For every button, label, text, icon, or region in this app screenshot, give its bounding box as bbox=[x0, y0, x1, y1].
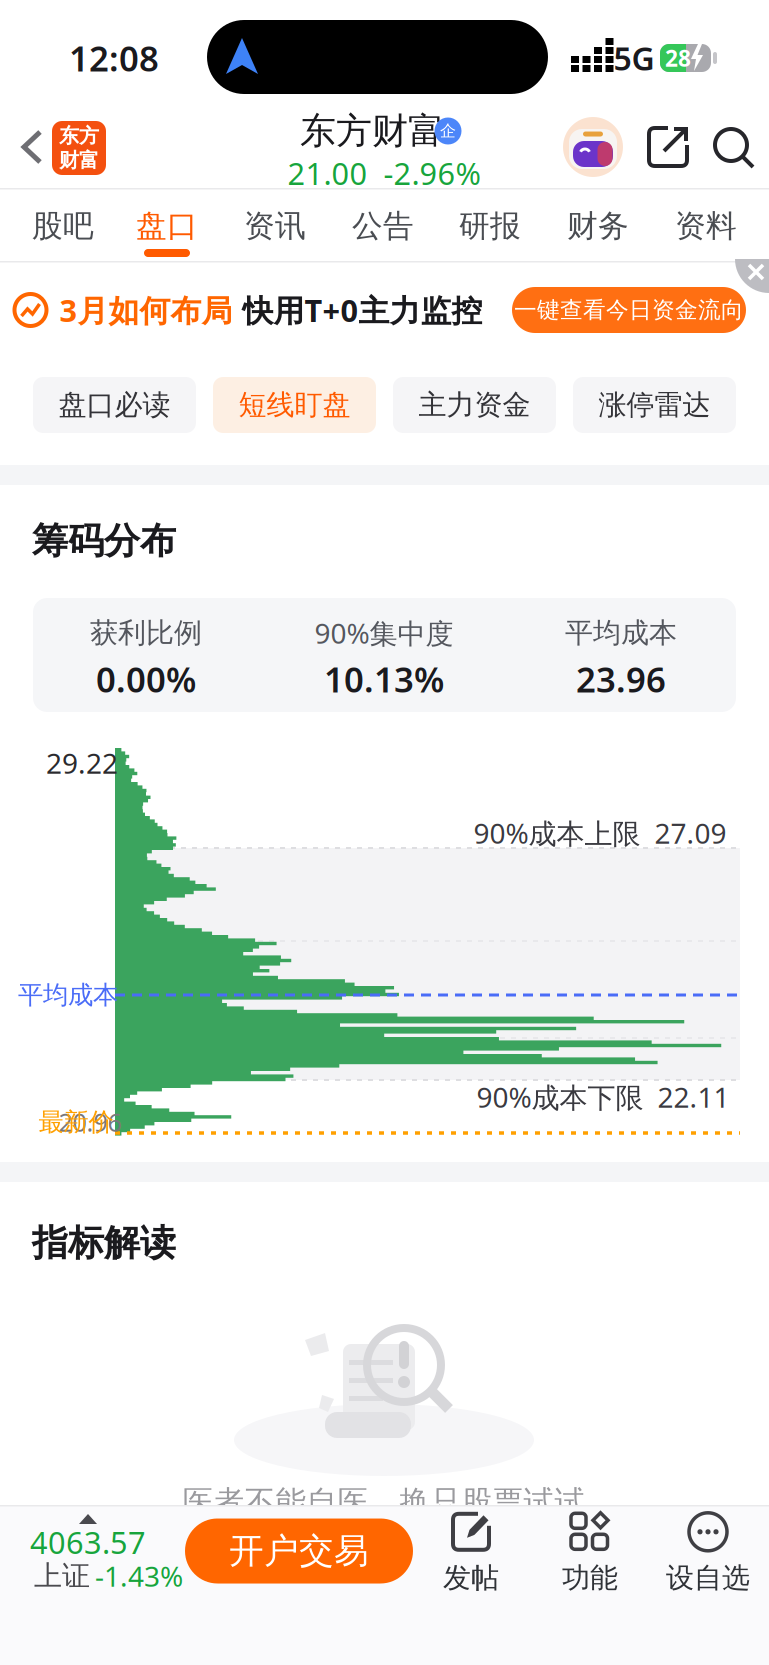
staticText: 平均成本 bbox=[565, 616, 677, 650]
staticText: 功能 bbox=[562, 1561, 618, 1595]
button[interactable]: 资讯 bbox=[227, 194, 323, 258]
staticText: -1.43% bbox=[95, 1557, 183, 1595]
button[interactable]: 涨停雷达 bbox=[573, 377, 736, 433]
button[interactable]: Share bbox=[646, 125, 690, 169]
staticText: 4063.57 bbox=[30, 1522, 146, 1562]
button[interactable]: 股吧 bbox=[15, 194, 111, 258]
staticText: 资料 bbox=[675, 207, 737, 245]
button[interactable]: 设自选 bbox=[648, 1506, 768, 1600]
button[interactable]: 研报 bbox=[442, 194, 538, 258]
staticText: 筹码分布 bbox=[32, 519, 176, 563]
staticText: 东方 bbox=[59, 123, 99, 148]
button[interactable]: 功能 bbox=[540, 1506, 640, 1600]
staticText: 盘口必读 bbox=[58, 388, 170, 422]
staticText: 90%集中度 bbox=[314, 614, 453, 652]
staticText: 一键查看今日资金流向 bbox=[514, 296, 744, 324]
button[interactable]: Close bbox=[733, 259, 769, 293]
staticText: 主力资金 bbox=[418, 388, 530, 422]
staticText: 公告 bbox=[352, 207, 414, 245]
staticText: 财富 bbox=[59, 148, 99, 173]
staticText: 发帖 bbox=[443, 1561, 499, 1595]
button[interactable]: 公告 bbox=[335, 194, 431, 258]
button[interactable]: 开户交易 bbox=[185, 1518, 413, 1583]
staticText: 医者不能自医，换只股票试试 bbox=[182, 1483, 585, 1521]
staticText: 最新价 bbox=[38, 1106, 113, 1137]
staticText: 上证 bbox=[34, 1559, 90, 1593]
staticText: 90%成本下限 22.11 bbox=[476, 1078, 729, 1116]
staticText: 开户交易 bbox=[229, 1530, 369, 1572]
staticText: 20.96 bbox=[58, 1105, 121, 1139]
button[interactable]: 3月如何布局 快用T+0主力监控 bbox=[11, 278, 482, 342]
staticText: 12:08 bbox=[69, 35, 159, 81]
button[interactable]: 财务 bbox=[550, 194, 646, 258]
staticText: 短线盯盘 bbox=[238, 388, 350, 422]
button[interactable]: 盘口 bbox=[119, 194, 215, 258]
button[interactable]: 短线盯盘 bbox=[213, 377, 376, 433]
staticText: 10.13% bbox=[324, 656, 444, 702]
staticText: 3月如何布局 bbox=[59, 290, 232, 330]
staticText: 盘口 bbox=[136, 207, 198, 245]
staticText: 平均成本 bbox=[18, 979, 118, 1010]
staticText: 0.00% bbox=[96, 656, 196, 702]
staticText: 设自选 bbox=[666, 1561, 750, 1595]
staticText: 23.96 bbox=[576, 656, 666, 702]
staticText: 股吧 bbox=[32, 207, 94, 245]
button[interactable]: 一键查看今日资金流向 bbox=[512, 287, 746, 333]
button[interactable]: Search bbox=[712, 126, 756, 170]
button[interactable]: 主力资金 bbox=[393, 377, 556, 433]
staticText: 企 bbox=[440, 121, 456, 141]
staticText: 涨停雷达 bbox=[598, 388, 710, 422]
button[interactable]: 东方财富 bbox=[52, 121, 106, 175]
button[interactable]: 智能助手 bbox=[563, 117, 623, 177]
staticText: 财务 bbox=[567, 207, 629, 245]
staticText: 90%成本上限 27.09 bbox=[473, 814, 726, 852]
staticText: 东方财富 bbox=[300, 109, 444, 153]
staticText: -2.96% bbox=[383, 153, 480, 193]
button[interactable]: 发帖 bbox=[421, 1506, 521, 1600]
staticText: 21.00 bbox=[287, 153, 367, 193]
button[interactable]: Back bbox=[20, 130, 46, 164]
staticText: 快用T+0主力监控 bbox=[242, 290, 482, 330]
staticText: 资讯 bbox=[244, 207, 306, 245]
staticText: 29.22 bbox=[46, 744, 118, 782]
staticText: 5G bbox=[613, 37, 654, 79]
button[interactable]: 盘口必读 bbox=[33, 377, 196, 433]
staticText: 指标解读 bbox=[32, 1221, 176, 1265]
staticText: 获利比例 bbox=[90, 616, 202, 650]
staticText: 研报 bbox=[459, 207, 521, 245]
button[interactable]: 资料 bbox=[658, 194, 754, 258]
button[interactable]: 上证指数 bbox=[0, 1506, 180, 1598]
staticText: 28 bbox=[665, 43, 691, 73]
